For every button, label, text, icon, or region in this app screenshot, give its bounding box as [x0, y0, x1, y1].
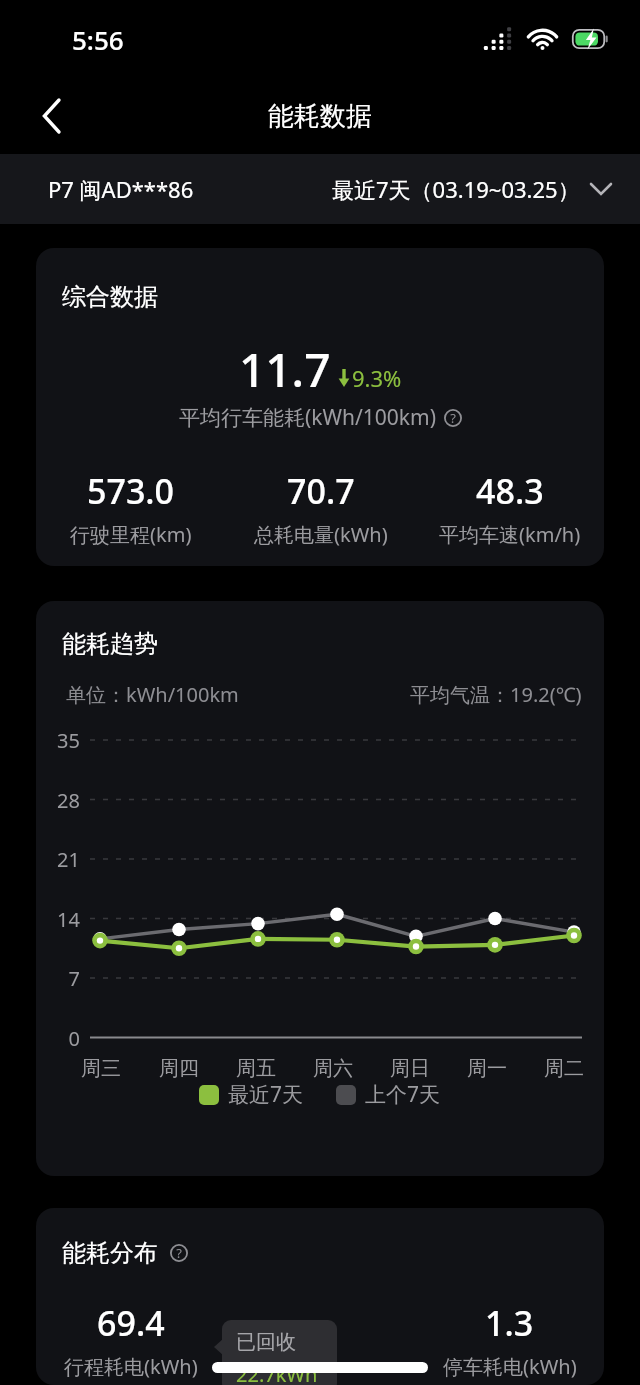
- staticText: 综合数据: [62, 282, 158, 312]
- staticText: 上个7天: [365, 1080, 441, 1109]
- staticText: 周三: [81, 1056, 121, 1081]
- staticText: 周四: [159, 1056, 199, 1081]
- staticText: 9.3%: [352, 363, 402, 393]
- staticText: 总耗电量(kWh): [254, 521, 388, 548]
- staticText: 能耗数据: [268, 100, 372, 133]
- staticText: 21: [36, 846, 80, 873]
- staticText: 周六: [313, 1056, 353, 1081]
- button[interactable]: 573.0: [36, 468, 226, 548]
- staticText: 单位：kWh/100km: [66, 681, 239, 708]
- staticText: 周日: [390, 1056, 430, 1081]
- button[interactable]: Back: [24, 88, 80, 144]
- button[interactable]: 综合数据: [36, 248, 604, 566]
- staticText: 35: [36, 727, 80, 754]
- staticText: 14: [36, 906, 80, 933]
- staticText: ?: [450, 409, 456, 427]
- staticText: 能耗分布: [62, 1238, 158, 1268]
- staticText: 573.0: [87, 468, 175, 514]
- staticText: 周二: [544, 1056, 584, 1081]
- staticText: 28: [36, 787, 80, 814]
- staticText: 行程耗电(kWh): [64, 1353, 198, 1380]
- button[interactable]: 最近7天: [199, 1080, 304, 1109]
- staticText: 平均行车能耗(kWh/100km): [179, 403, 437, 432]
- button[interactable]: 1.3: [415, 1300, 604, 1380]
- staticText: ?: [176, 1244, 182, 1262]
- staticText: 周一: [467, 1056, 507, 1081]
- staticText: 11.7: [239, 338, 331, 401]
- staticText: 最近7天: [228, 1080, 304, 1109]
- staticText: 能耗趋势: [62, 629, 158, 659]
- button[interactable]: 70.7: [226, 468, 415, 548]
- staticText: 7: [36, 965, 80, 992]
- staticText: 0: [36, 1025, 80, 1052]
- staticText: 平均车速(km/h): [439, 521, 581, 548]
- staticText: 69.4: [97, 1300, 165, 1346]
- staticText: 平均气温：19.2(℃): [410, 681, 582, 708]
- button[interactable]: 48.3: [415, 468, 604, 548]
- staticText: P7 闽AD***86: [48, 174, 194, 204]
- button[interactable]: 能耗分布: [36, 1208, 604, 1385]
- button[interactable]: 最近7天（03.19~03.25）: [326, 166, 618, 212]
- staticText: 22.7kWh: [236, 1361, 318, 1385]
- staticText: 70.7: [287, 468, 355, 514]
- staticText: 最近7天（03.19~03.25）: [332, 174, 580, 204]
- button[interactable]: 能耗趋势: [36, 601, 604, 1176]
- staticText: 1.3: [485, 1300, 534, 1346]
- button[interactable]: 69.4: [36, 1300, 226, 1380]
- staticText: 48.3: [476, 468, 544, 514]
- staticText: 5:56: [72, 22, 124, 57]
- staticText: 停车耗电(kWh): [443, 1353, 577, 1380]
- staticText: 周五: [236, 1056, 276, 1081]
- staticText: 行驶里程(km): [70, 521, 192, 548]
- button[interactable]: 上个7天: [336, 1080, 441, 1109]
- staticText: 已回收: [236, 1330, 296, 1355]
